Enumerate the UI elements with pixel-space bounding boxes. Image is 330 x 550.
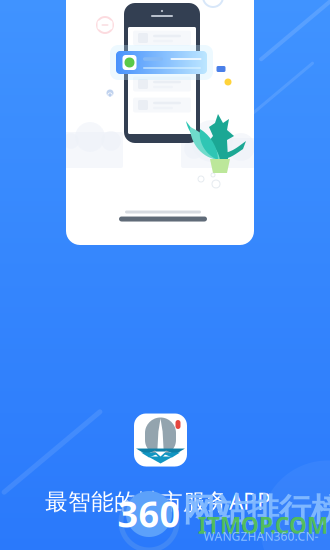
staticText: 网站排行榜 [183, 490, 330, 530]
staticText: 最智能的城市服务APP [45, 486, 271, 516]
staticText: WANGZHAN360.CN- [203, 528, 318, 544]
staticText: ITMOP.COM [198, 510, 328, 540]
staticText: 360 [117, 490, 180, 537]
button[interactable]: App icon [134, 413, 187, 466]
